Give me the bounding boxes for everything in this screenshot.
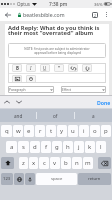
staticText: d	[33, 143, 37, 151]
button[interactable]: h	[63, 141, 73, 153]
button[interactable]: i	[79, 125, 89, 137]
button[interactable]: b	[61, 157, 71, 169]
button[interactable]: q	[1, 125, 12, 137]
button[interactable]: More options	[101, 8, 112, 21]
staticText: q	[5, 127, 9, 135]
button[interactable]: t	[46, 125, 56, 137]
staticText: 2	[94, 13, 97, 18]
button[interactable]: Insert emoji	[26, 75, 36, 83]
button[interactable]: w	[13, 125, 23, 137]
staticText: b	[64, 159, 68, 167]
button[interactable]: I	[26, 64, 36, 72]
button[interactable]: Shift	[1, 157, 14, 169]
staticText: “	[58, 65, 60, 71]
button[interactable]: Dictation	[25, 173, 35, 185]
staticText: w	[16, 127, 21, 135]
staticText: B	[16, 65, 19, 71]
staticText: h	[66, 143, 70, 151]
staticText: z	[22, 159, 25, 167]
button[interactable]: k	[85, 141, 95, 153]
staticText: r	[39, 127, 42, 135]
staticText: U	[43, 65, 47, 71]
button[interactable]: o	[90, 125, 100, 137]
staticText: f	[45, 143, 48, 151]
button[interactable]: Insert link	[68, 64, 78, 72]
staticText: space	[51, 176, 63, 182]
button[interactable]: Next field	[14, 96, 24, 108]
staticText: 36%	[94, 1, 103, 7]
button[interactable]: space	[36, 173, 77, 185]
button[interactable]: g	[52, 141, 62, 153]
button[interactable]: a	[6, 141, 17, 153]
staticText: j	[78, 143, 80, 151]
button[interactable]: f	[41, 141, 51, 153]
button[interactable]: x	[29, 157, 38, 169]
staticText: Done	[97, 99, 111, 106]
staticText: Effect	[62, 87, 71, 92]
button[interactable]: Attach file	[82, 64, 92, 72]
staticText: e	[27, 127, 31, 135]
button[interactable]: “	[54, 64, 64, 72]
staticText: u	[71, 127, 75, 135]
button[interactable]: l	[96, 141, 106, 153]
button[interactable]: of	[37, 109, 74, 122]
button[interactable]: Effect	[61, 86, 106, 93]
button[interactable]: y	[57, 125, 67, 137]
staticText: i	[83, 127, 85, 135]
button[interactable]: Back	[0, 8, 15, 21]
staticText: a	[10, 143, 14, 151]
button[interactable]: a	[75, 109, 112, 122]
staticText: and	[14, 113, 23, 119]
button[interactable]: U	[40, 64, 50, 72]
button[interactable]: Emoji keyboard	[14, 173, 24, 185]
button[interactable]: z	[19, 157, 28, 169]
staticText: 7:38 pm	[49, 1, 68, 8]
staticText: of	[53, 113, 58, 119]
staticText: a	[92, 113, 95, 119]
button[interactable]: return	[78, 173, 111, 185]
button[interactable]: Paragraph	[8, 86, 54, 93]
staticText: l	[100, 143, 102, 151]
staticText: x	[32, 159, 36, 167]
button[interactable]: j	[74, 141, 84, 153]
staticText: n	[75, 159, 79, 167]
button[interactable]: n	[72, 157, 82, 169]
staticText: beatlesbible.com	[23, 11, 65, 18]
button[interactable]: v	[50, 157, 60, 169]
button[interactable]: Previous field	[2, 96, 12, 108]
button[interactable]: and	[0, 109, 36, 122]
button[interactable]: 123	[1, 173, 13, 185]
staticText: Optus	[17, 1, 30, 7]
button[interactable]: s	[18, 141, 29, 153]
staticText: c	[43, 159, 46, 167]
staticText: I	[30, 65, 32, 71]
button[interactable]: u	[68, 125, 78, 137]
staticText: v	[53, 159, 57, 167]
staticText: m	[85, 159, 91, 167]
button[interactable]: Insert image	[12, 75, 22, 83]
staticText: s	[22, 143, 25, 151]
staticText: t	[50, 127, 53, 135]
button[interactable]: p	[101, 125, 111, 137]
button[interactable]: r	[35, 125, 45, 137]
button[interactable]: beatlesbible.com	[18, 11, 65, 18]
staticText: NOTE: first posts are subject to adminis…	[24, 47, 90, 51]
button[interactable]: e	[24, 125, 34, 137]
staticText: return	[88, 176, 101, 182]
staticText: p	[104, 127, 108, 135]
staticText: y	[60, 127, 64, 135]
staticText: k	[88, 143, 92, 151]
button[interactable]: Backspace	[98, 157, 111, 169]
staticText: Paragraph	[9, 87, 26, 92]
button[interactable]: m	[83, 157, 93, 169]
button[interactable]: d	[30, 141, 40, 153]
staticText: approval before being displayed	[34, 51, 81, 55]
button[interactable]: Done	[97, 96, 111, 108]
staticText: g	[55, 143, 59, 151]
button[interactable]: B	[12, 64, 22, 72]
button[interactable]: c	[39, 157, 49, 169]
staticText: Add Reply: What do you think is their mo…	[8, 24, 100, 37]
staticText: o	[93, 127, 97, 135]
button[interactable]: Tabs	[88, 8, 101, 21]
staticText: 123	[3, 176, 11, 182]
